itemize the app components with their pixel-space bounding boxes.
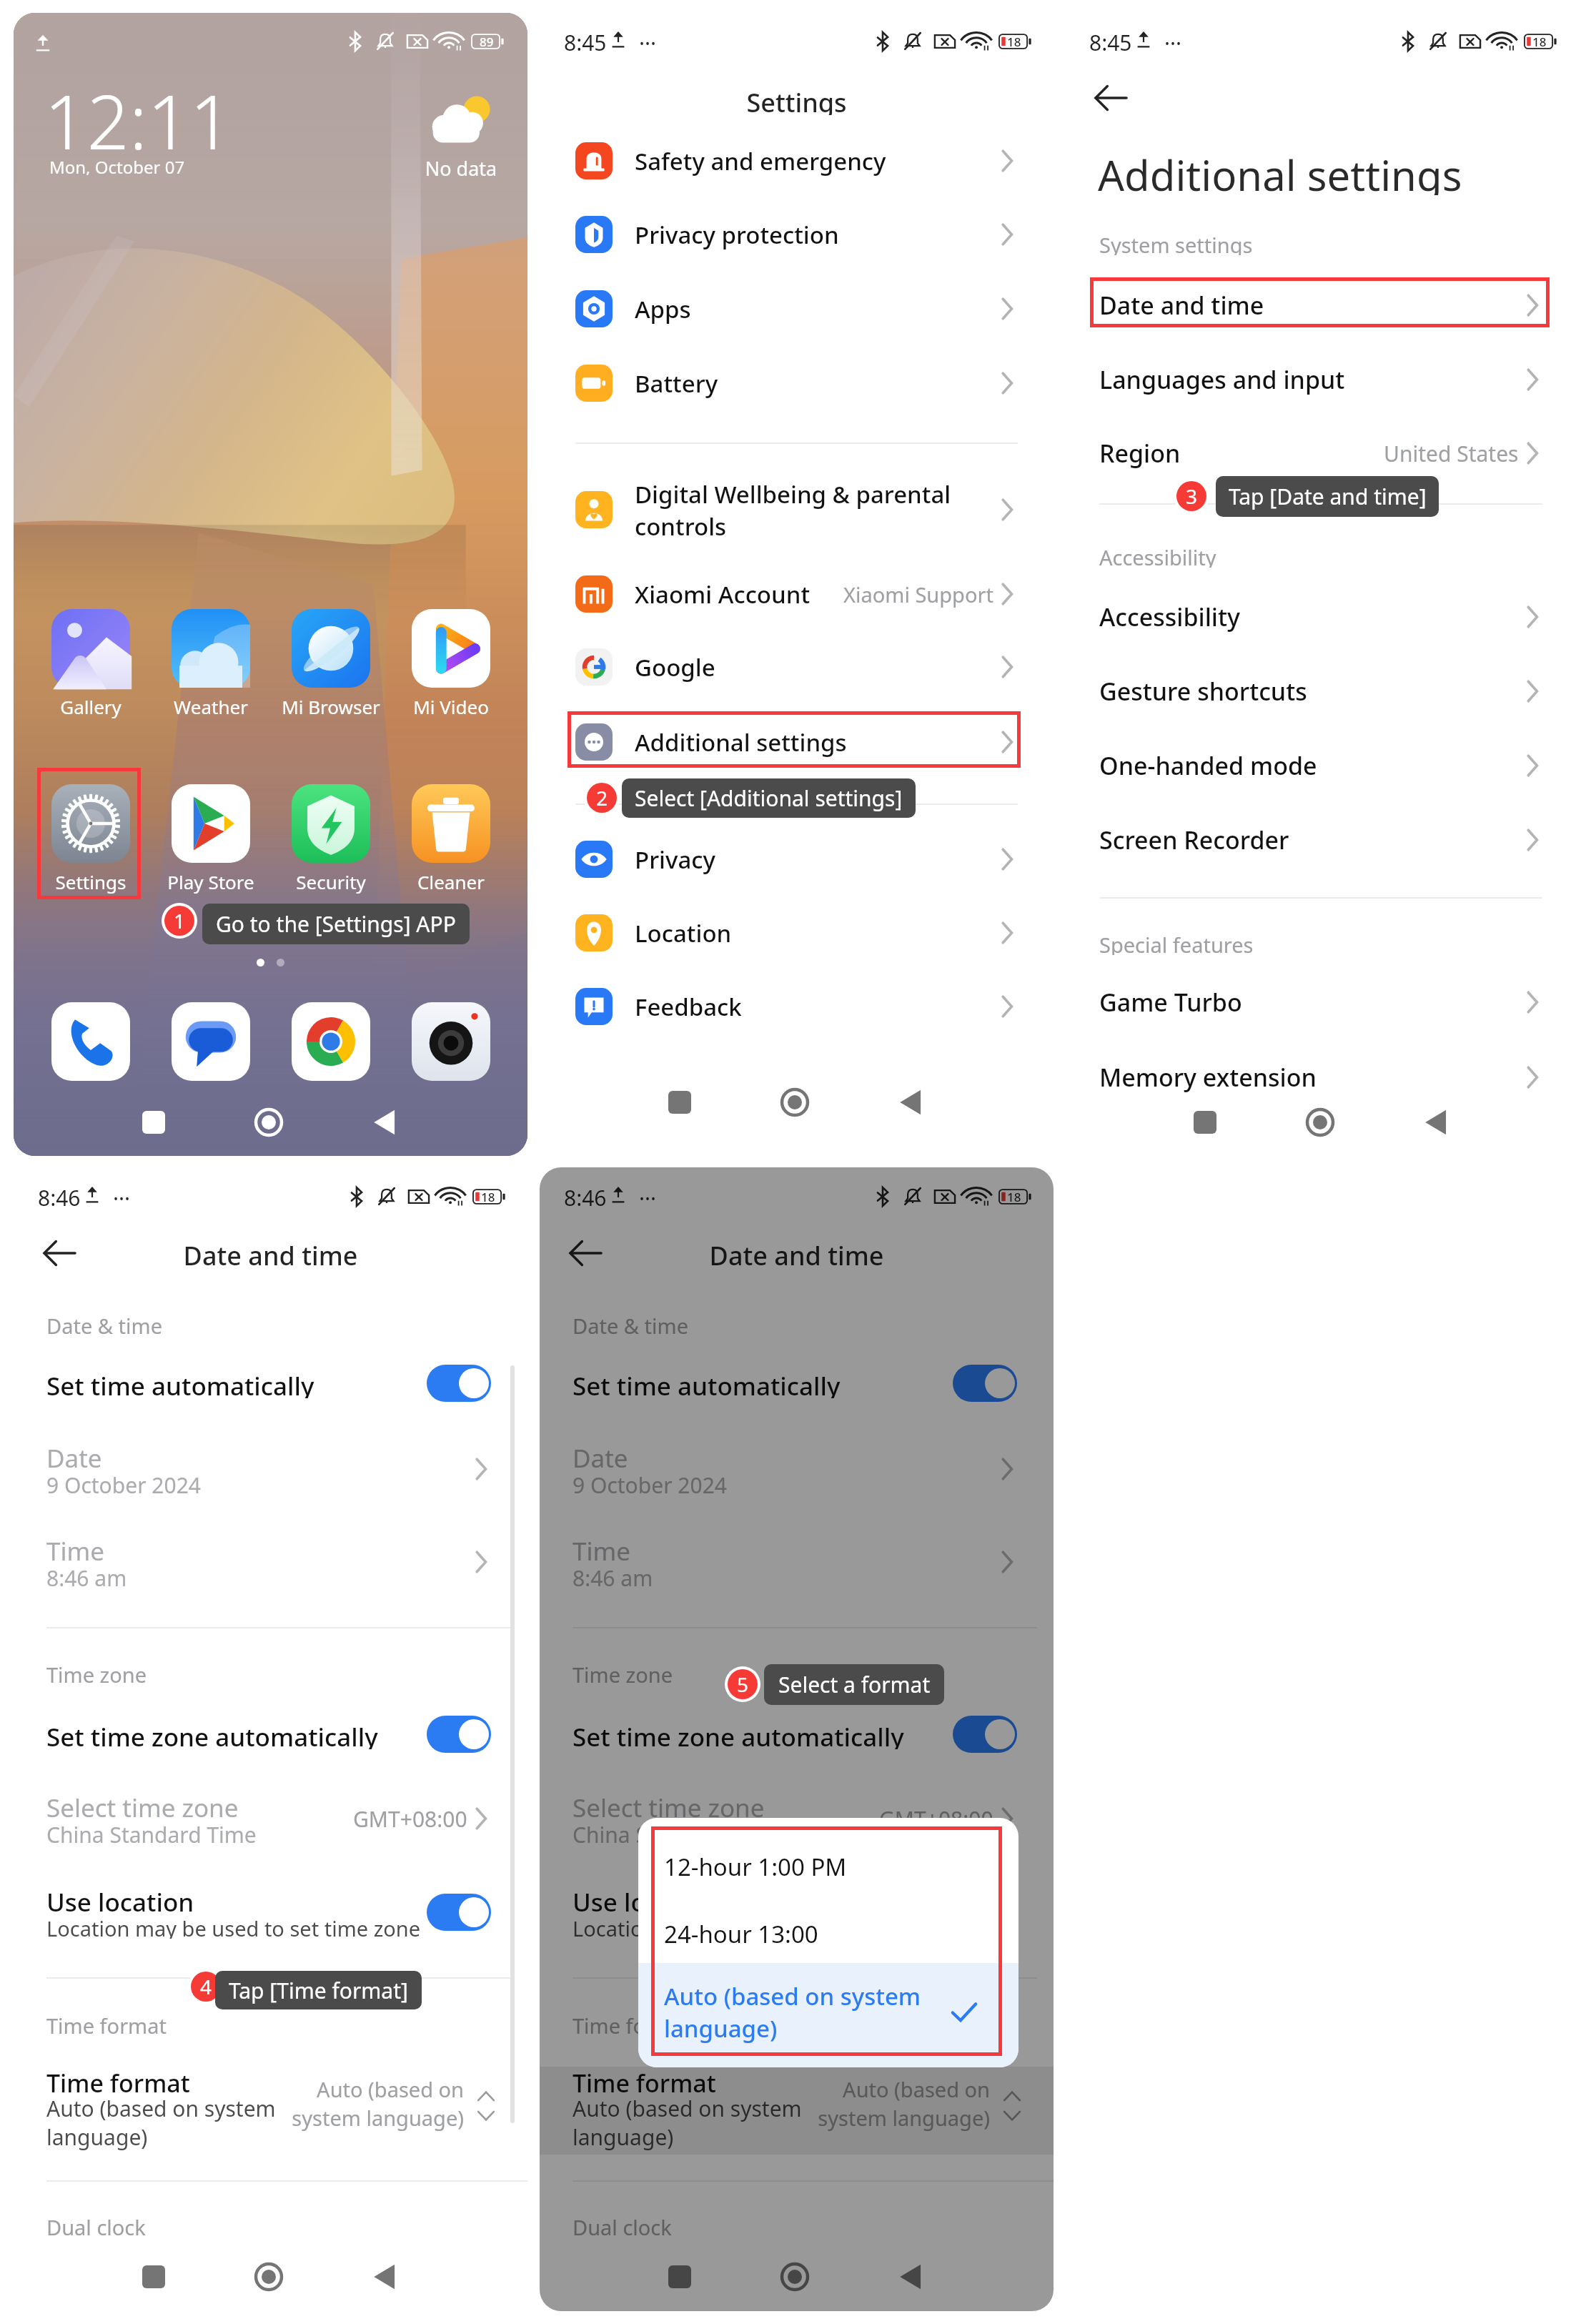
button[interactable]: Security [274, 784, 388, 894]
button[interactable]: Region [1065, 416, 1579, 490]
staticText: 8:45 [1089, 28, 1132, 53]
button[interactable]: 12-hour 1:00 PM [638, 1828, 1018, 1901]
button[interactable]: Cleaner [394, 784, 508, 894]
button[interactable]: Recents [657, 2254, 703, 2300]
button[interactable]: One-handed mode [1065, 728, 1579, 803]
button[interactable]: Play Store [154, 784, 268, 894]
button[interactable]: Back [36, 1230, 82, 1276]
staticText: GMT+08:00 [353, 1804, 467, 1834]
button[interactable]: Screen Recorder [1065, 803, 1579, 877]
button[interactable]: Date [540, 1430, 1054, 1508]
staticText: United States [1384, 439, 1519, 468]
staticText: Time format [46, 2012, 167, 2036]
button[interactable]: Weather [154, 609, 268, 719]
staticText: Time zone [46, 1661, 147, 1685]
button[interactable]: Recents [657, 1079, 703, 1125]
button[interactable]: Use location [540, 1875, 1054, 1949]
button[interactable]: Recents [1182, 1099, 1228, 1145]
staticText: Select time zone [46, 1791, 239, 1820]
button[interactable]: Set time automatically [540, 1346, 1054, 1420]
button[interactable]: Feedback [540, 969, 1054, 1044]
button[interactable]: Accessibility [1065, 580, 1579, 654]
button[interactable]: Set time zone automatically [14, 1697, 527, 1771]
button[interactable]: Date [14, 1430, 527, 1508]
staticText: Auto (based on system language) [664, 1980, 921, 2044]
button[interactable]: Set time zone automatically [540, 1697, 1054, 1771]
staticText: ··· [639, 1184, 657, 1207]
staticText: GMT+08:00 [879, 1804, 993, 1834]
staticText: Accessibility [1099, 543, 1216, 568]
staticText: 18 [1007, 1189, 1021, 1205]
button[interactable]: Apps [540, 272, 1054, 346]
staticText: Date [46, 1441, 102, 1470]
button[interactable]: Back [362, 2254, 407, 2300]
button[interactable]: Select time zone [540, 1779, 1054, 1858]
button[interactable]: Game Turbo [1065, 965, 1579, 1039]
button[interactable]: Memory extension [1065, 1040, 1579, 1114]
button[interactable]: Gallery [34, 609, 148, 719]
button[interactable]: Back [362, 1099, 407, 1145]
button[interactable]: Battery [540, 346, 1054, 420]
staticText: Select time zone [573, 1791, 765, 1820]
button[interactable]: Time format [540, 2067, 1054, 2155]
button[interactable]: Time [540, 1523, 1054, 1601]
button[interactable]: Chrome [292, 1002, 370, 1081]
button[interactable]: Back [562, 1230, 608, 1276]
button[interactable]: Home [246, 1099, 292, 1145]
staticText: Xiaomi Support [843, 580, 993, 608]
staticText: 12-hour 1:00 PM [664, 1851, 847, 1878]
staticText: Time format [573, 2067, 716, 2095]
button[interactable]: Messages [172, 1002, 250, 1081]
button[interactable]: Recents [131, 2254, 177, 2300]
button[interactable]: Back [1413, 1099, 1459, 1145]
button[interactable]: Safety and emergency [540, 124, 1054, 198]
staticText: Memory extension [1099, 1061, 1317, 1094]
button[interactable]: Home [246, 2254, 292, 2300]
staticText: Time [46, 1534, 104, 1563]
staticText: Safety and emergency [635, 145, 886, 177]
staticText: Digital Wellbeing & parental controls [635, 478, 951, 542]
button[interactable]: Camera [412, 1002, 490, 1081]
button[interactable]: Set time automatically [14, 1346, 527, 1420]
button[interactable]: Phone [51, 1002, 130, 1081]
button[interactable]: Mi Video [394, 609, 508, 719]
button[interactable]: Time [14, 1523, 527, 1601]
button[interactable]: Digital Wellbeing & parental controls [540, 473, 1054, 547]
button[interactable]: Time format [14, 2067, 527, 2155]
button[interactable]: Auto (based on system language) [638, 1963, 1018, 2067]
button[interactable]: Mi Browser [274, 609, 388, 719]
staticText: Mi Browser [274, 694, 388, 719]
button[interactable]: Location [540, 896, 1054, 970]
button[interactable]: Home [1297, 1099, 1343, 1145]
button[interactable]: Select time zone [14, 1779, 527, 1858]
staticText: Weather [154, 694, 268, 719]
button[interactable]: Home [772, 2254, 818, 2300]
button[interactable]: Settings [34, 784, 148, 894]
button[interactable]: Date and time [1065, 268, 1579, 342]
staticText: Date & time [46, 1312, 162, 1336]
button[interactable]: Languages and input [1065, 342, 1579, 417]
button[interactable]: 24-hour 13:00 [638, 1901, 1018, 1963]
staticText: Time format [46, 2067, 190, 2095]
button[interactable]: Use location [14, 1875, 527, 1949]
staticText: One-handed mode [1099, 749, 1317, 782]
button[interactable]: Gesture shortcuts [1065, 654, 1579, 728]
button[interactable]: Back [1088, 75, 1134, 121]
button[interactable]: Xiaomi Account [540, 557, 1054, 631]
button[interactable]: Google [540, 630, 1054, 704]
staticText: Privacy [635, 844, 715, 876]
staticText: Time format [573, 2012, 693, 2036]
button[interactable]: Back [888, 2254, 933, 2300]
staticText: Date and time [1099, 289, 1264, 322]
staticText: Location [635, 917, 732, 949]
button[interactable]: Privacy protection [540, 197, 1054, 272]
staticText: 8:46 [38, 1183, 81, 1208]
button[interactable]: Recents [131, 1099, 177, 1145]
staticText: Apps [635, 293, 691, 325]
button[interactable]: Privacy [540, 822, 1054, 896]
button[interactable]: Home [772, 1079, 818, 1125]
button[interactable]: Additional settings [540, 705, 1054, 779]
staticText: Set time zone automatically [573, 1720, 904, 1749]
staticText: Privacy protection [635, 219, 839, 251]
button[interactable]: Back [888, 1079, 933, 1125]
